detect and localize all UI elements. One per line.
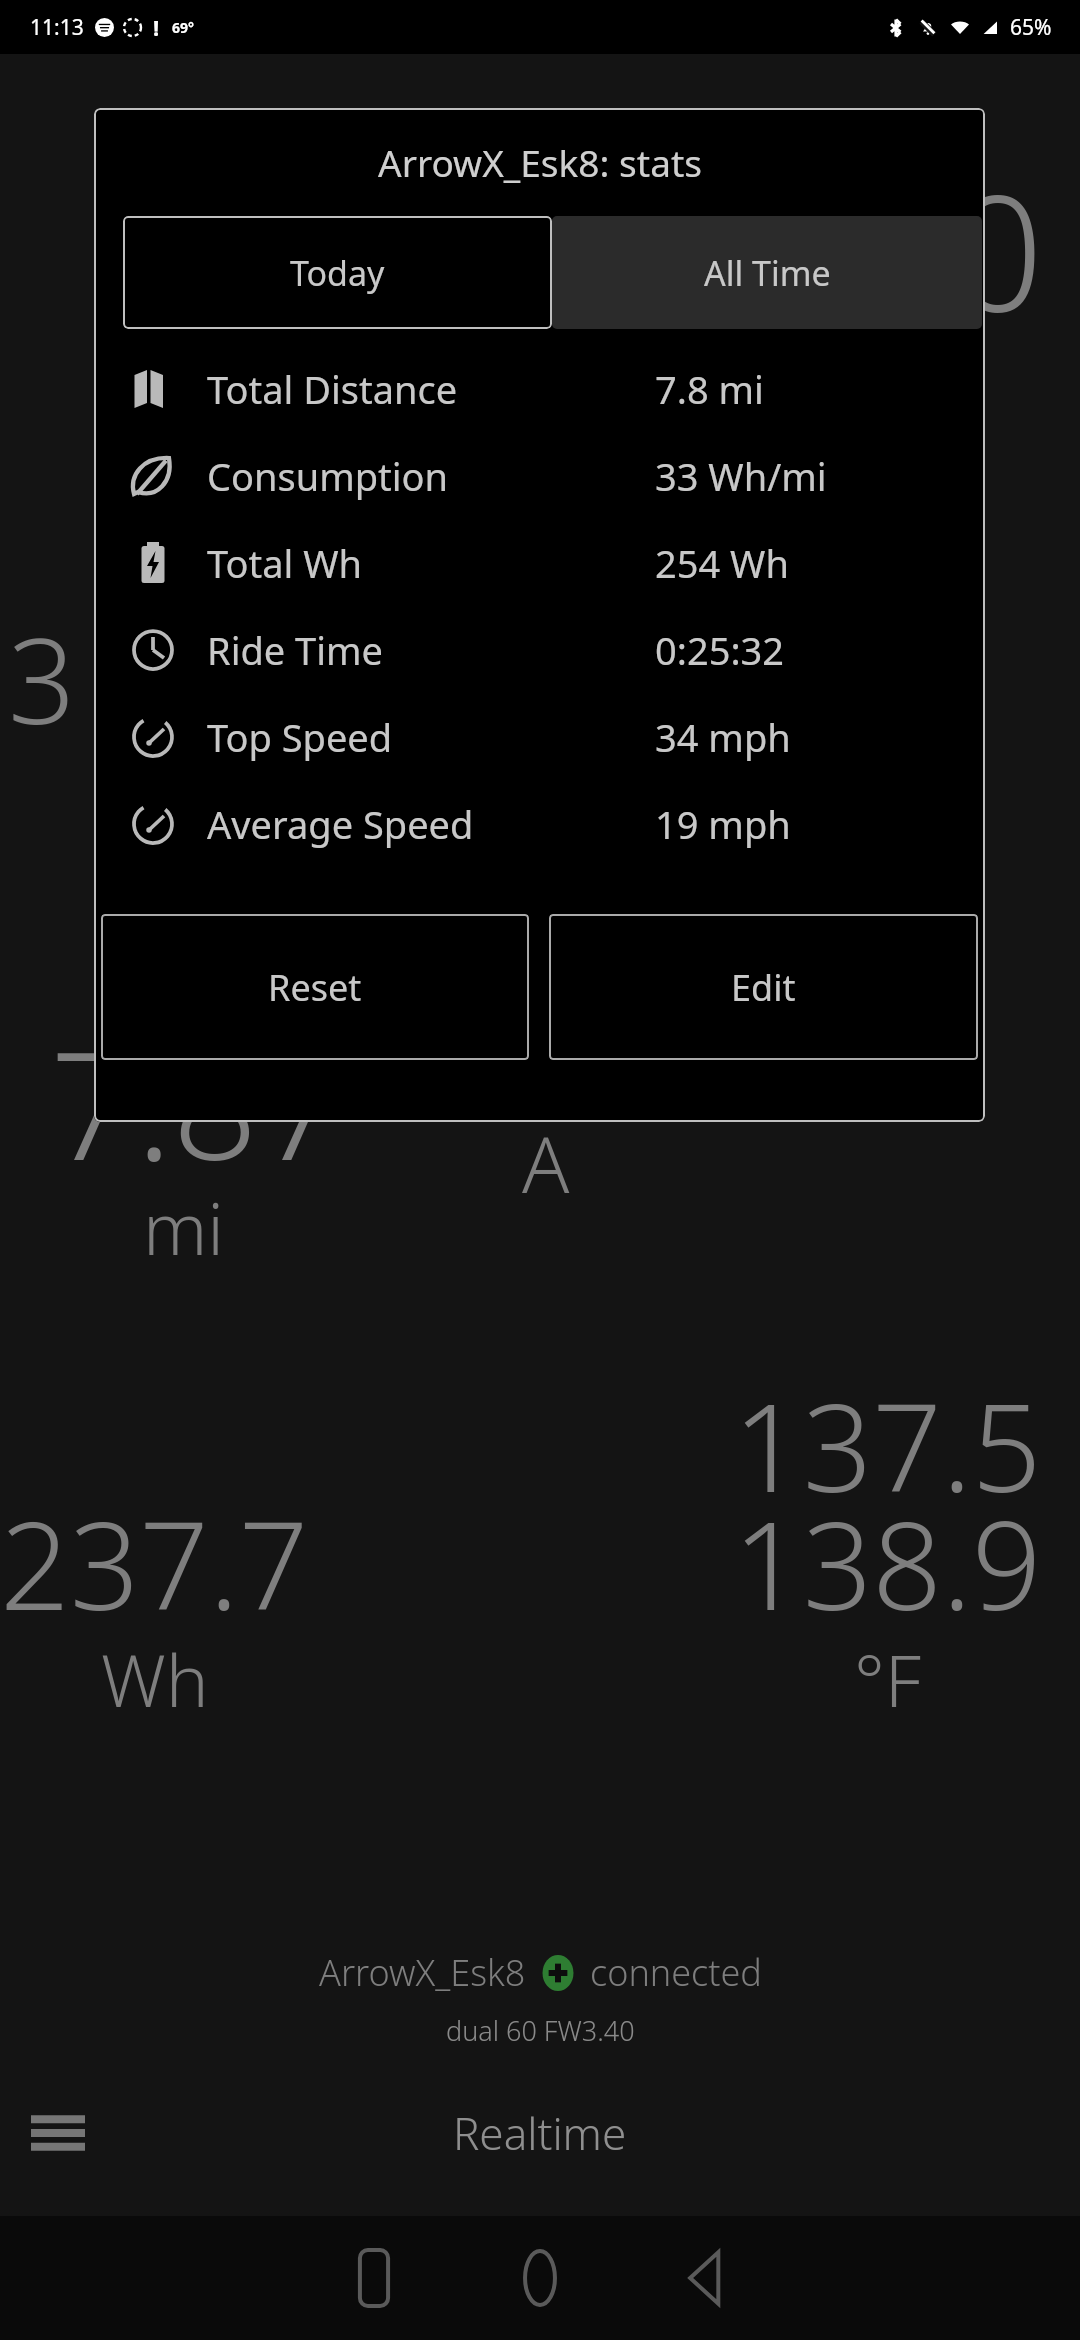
button[interactable]: Total Distance (94, 345, 985, 432)
button[interactable]: Back (651, 2223, 761, 2333)
staticText: 0:25:32 (655, 624, 785, 676)
staticText: Edit (731, 963, 796, 1012)
staticText: Realtime (453, 2103, 627, 2163)
staticText: connected (590, 1948, 762, 1997)
button[interactable]: Top Speed (94, 693, 985, 780)
staticText: ArrowX_Esk8: stats (378, 137, 702, 187)
staticText: Wh (101, 1630, 209, 1728)
staticText: All Time (704, 250, 831, 296)
staticText: 34 mph (655, 711, 791, 763)
staticText: 69° (172, 18, 194, 37)
staticText: ArrowX_Esk8 (319, 1948, 526, 1997)
staticText: Top Speed (207, 711, 393, 763)
staticText: 7.87 (50, 1000, 344, 1204)
staticText: 11:13 (30, 13, 84, 42)
button[interactable]: Average Speed (94, 780, 985, 867)
staticText: 3 (8, 598, 76, 759)
staticText: Total Distance (207, 363, 458, 415)
staticText: °F (854, 1630, 922, 1728)
button[interactable]: Total Wh (94, 519, 985, 606)
staticText: mi (143, 1178, 225, 1276)
staticText: dual 60 FW3.40 (446, 2012, 635, 2049)
button[interactable]: Menu (30, 2105, 86, 2161)
staticText: A (522, 1110, 570, 1216)
staticText: Reset (268, 963, 362, 1012)
button[interactable]: Home (485, 2223, 595, 2333)
staticText: Total Wh (207, 537, 363, 589)
button[interactable]: All Time (552, 216, 982, 329)
button[interactable]: Realtime (453, 2103, 627, 2163)
staticText: Today (290, 250, 385, 296)
staticText: 138.9 (733, 1480, 1042, 1646)
button[interactable]: Edit (549, 914, 978, 1060)
staticText: 33 Wh/mi (655, 450, 827, 502)
staticText: Average Speed (207, 798, 474, 850)
staticText: 65% (1010, 13, 1052, 42)
staticText: 137.5 (733, 1362, 1042, 1528)
button[interactable]: Ride Time (94, 606, 985, 693)
button[interactable]: Today (123, 216, 552, 329)
button[interactable]: Reset (101, 914, 529, 1060)
staticText: 19 mph (655, 798, 791, 850)
staticText: Consumption (207, 450, 449, 502)
button[interactable]: Recents (319, 2223, 429, 2333)
button[interactable]: Consumption (94, 432, 985, 519)
staticText: Ride Time (207, 624, 384, 676)
staticText: 254 Wh (655, 537, 789, 589)
staticText: ! (153, 12, 160, 42)
staticText: 7.8 mi (655, 363, 764, 415)
staticText: 0 (952, 140, 1044, 358)
staticText: 237.7 (0, 1480, 309, 1646)
